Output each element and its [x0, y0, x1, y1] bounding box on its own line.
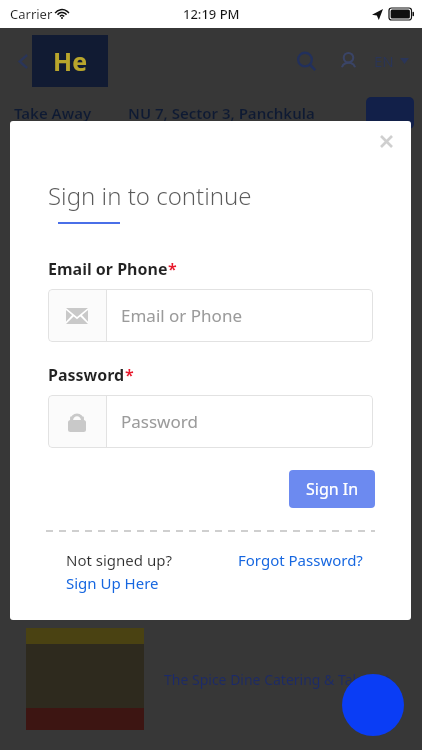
- button[interactable]: Account: [331, 44, 365, 78]
- staticText: Not signed up?: [66, 550, 172, 570]
- button[interactable]: EN: [371, 51, 412, 71]
- staticText: Forgot Password?: [238, 550, 363, 570]
- staticText: He: [53, 44, 88, 78]
- staticText: 12:19 PM: [183, 5, 240, 23]
- staticText: Password: [48, 364, 125, 386]
- staticText: *: [168, 258, 177, 280]
- staticText: Email or Phone: [121, 304, 242, 327]
- staticText: Take Away: [14, 103, 92, 123]
- staticText: *: [125, 364, 134, 386]
- staticText: Sign Up Here: [66, 573, 159, 593]
- staticText: The Spice Dine Catering & Takeout: [164, 670, 391, 689]
- button[interactable]: Forgot Password?: [238, 550, 363, 570]
- button[interactable]: Back: [6, 44, 40, 78]
- button[interactable]: Sign In: [289, 470, 375, 508]
- staticText: EN: [374, 51, 394, 71]
- button[interactable]: Location: [366, 97, 414, 129]
- staticText: Sign In: [306, 478, 359, 500]
- button[interactable]: Search: [289, 44, 323, 78]
- staticText: Carrier: [10, 5, 53, 23]
- button[interactable]: Cart: [342, 674, 404, 736]
- button[interactable]: Sign Up Here: [66, 573, 159, 593]
- staticText: Email or Phone: [48, 258, 168, 280]
- staticText: Sign in to continue: [48, 179, 252, 212]
- staticText: NU 7, Sector 3, Panchkula: [128, 103, 315, 123]
- button[interactable]: The Spice Dine Catering & Takeout: [0, 626, 422, 732]
- button[interactable]: Email or Phone: [48, 289, 373, 342]
- button[interactable]: Password: [48, 395, 373, 448]
- staticText: Password: [121, 410, 198, 433]
- button[interactable]: He: [32, 35, 108, 87]
- button[interactable]: Close: [373, 128, 399, 154]
